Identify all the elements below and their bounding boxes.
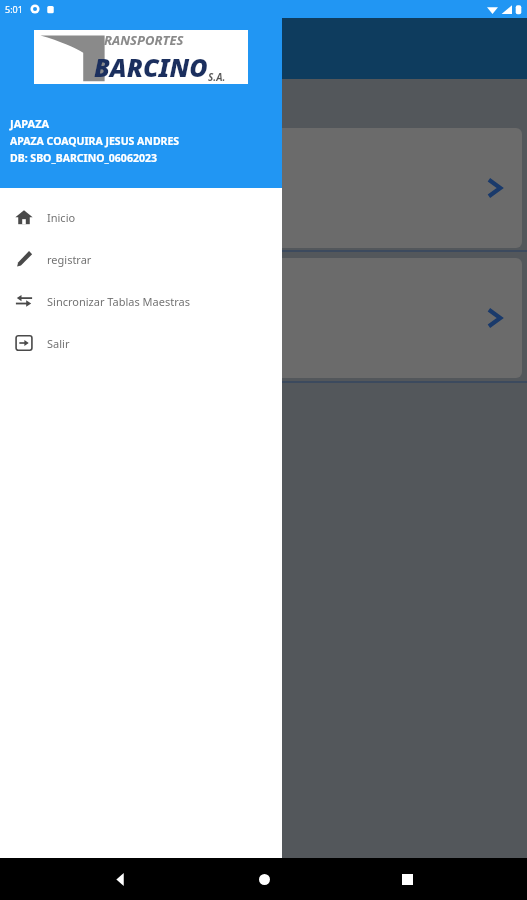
staticText: 5:01 [5,3,23,15]
button[interactable]: Back [96,858,144,900]
staticText: Sincronizar Tablas Maestras [47,294,190,309]
staticText: S.A. [208,70,226,84]
staticText: Salir [47,336,70,351]
staticText: RANSPORTES [104,31,184,49]
button[interactable]: Recent apps [383,858,431,900]
button[interactable]: Inicio [0,196,282,238]
staticText: BARCINO [94,50,208,84]
button[interactable]: Salir [0,322,282,364]
staticText: registrar [47,252,92,267]
button[interactable] [4,258,522,378]
button[interactable] [4,128,522,248]
button[interactable]: Home [240,858,288,900]
staticText: DB: SBO_BARCINO_06062023 [10,151,157,165]
staticText: APAZA COAQUIRA JESUS ANDRES [10,134,180,148]
button[interactable]: registrar [0,238,282,280]
staticText: JAPAZA [10,116,50,131]
button[interactable]: Sincronizar Tablas Maestras [0,280,282,322]
staticText: Inicio [47,210,76,225]
